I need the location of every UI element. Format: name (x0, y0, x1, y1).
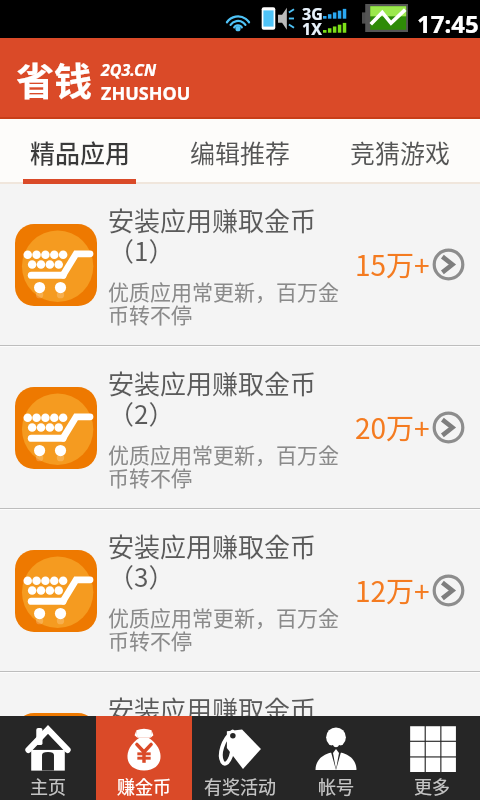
staticText: 20万+ (355, 407, 430, 448)
staticText: 竞猜游戏 (350, 134, 451, 170)
staticText: 有奖活动 (204, 773, 276, 799)
button[interactable]: 安装应用赚取金币（2） (0, 347, 480, 508)
staticText: 2Q3.CN (101, 59, 157, 81)
button[interactable]: 安装应用赚取金币（3） (0, 510, 480, 671)
button[interactable]: 竞猜游戏 (320, 119, 480, 184)
button[interactable]: 精品应用 (0, 119, 160, 184)
staticText: 编辑推荐 (190, 134, 291, 170)
button[interactable]: 有奖活动 (192, 716, 288, 800)
button[interactable]: 主页 (0, 716, 96, 800)
other: More (432, 574, 465, 607)
button[interactable]: 更多 (384, 716, 480, 800)
staticText: 更多 (414, 773, 450, 799)
staticText: 赚金币 (117, 773, 171, 799)
staticText: 12万+ (355, 570, 430, 611)
staticText: 安装应用赚取金币（1） (108, 201, 332, 269)
staticText: ZHUSHOU (101, 81, 191, 106)
staticText: 15万+ (355, 244, 430, 285)
staticText: 安装应用赚取金币（3） (108, 527, 332, 595)
staticText: 优质应用常更新，百万金币转不停 (108, 276, 346, 329)
staticText: 省钱 (16, 51, 93, 106)
other: More (432, 248, 465, 281)
other: Battery (362, 4, 408, 32)
other: WiFi (225, 7, 251, 32)
other: Vibrate (261, 5, 295, 32)
button[interactable]: 赚金币 (96, 716, 192, 800)
staticText: 主页 (30, 773, 66, 799)
staticText: 帐号 (318, 773, 354, 799)
button[interactable]: 帐号 (288, 716, 384, 800)
staticText: 优质应用常更新，百万金币转不停 (108, 439, 346, 492)
staticText: 精品应用 (30, 134, 131, 170)
button[interactable]: 编辑推荐 (160, 119, 320, 184)
staticText: 17:45 (417, 7, 479, 40)
staticText: 安装应用赚取金币（2） (108, 364, 332, 432)
staticText: 3G (302, 3, 323, 25)
staticText: 1X (302, 18, 322, 40)
other: More (432, 411, 465, 444)
staticText: 优质应用常更新，百万金币转不停 (108, 602, 346, 655)
button[interactable]: 安装应用赚取金币（4） (0, 673, 480, 716)
button[interactable]: 安装应用赚取金币（1） (0, 184, 480, 345)
staticText: 安装应用赚取金币（4） (108, 690, 332, 716)
